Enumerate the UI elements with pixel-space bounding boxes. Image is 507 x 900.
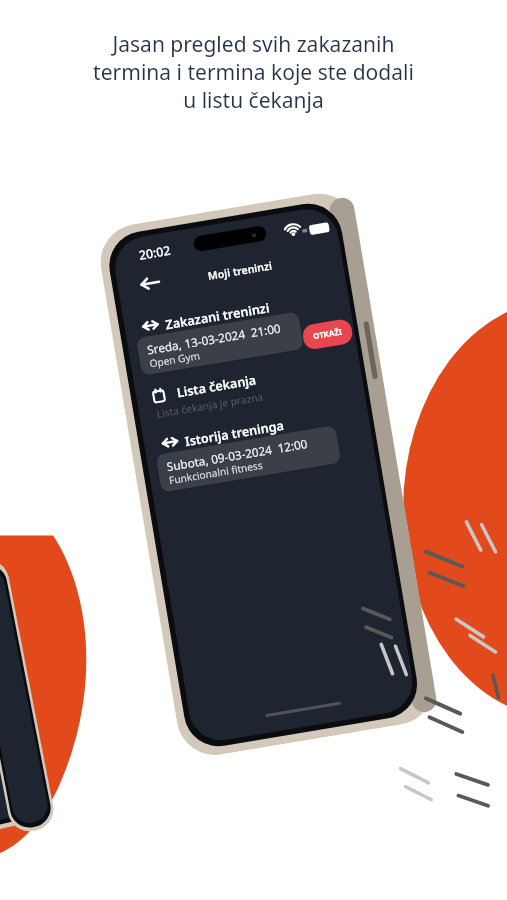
button[interactable]: Moji treninzi promo screen <box>0 0 507 900</box>
